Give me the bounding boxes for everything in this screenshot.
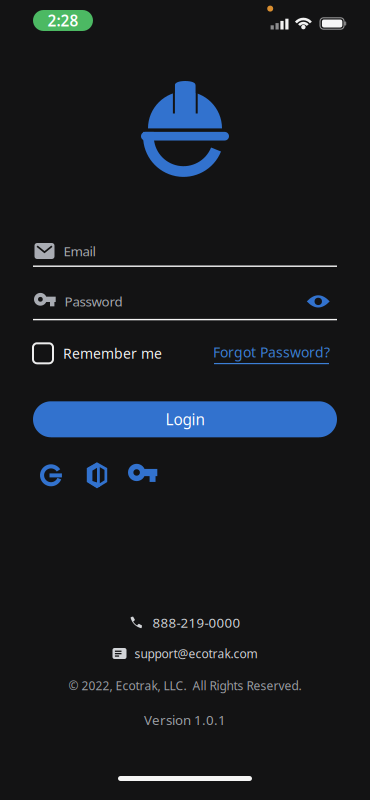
staticText: Version 1.0.1 xyxy=(144,711,226,729)
staticText: 2:28 xyxy=(47,10,78,31)
button[interactable]: Login xyxy=(33,401,337,437)
staticText: support@ecotrak.com xyxy=(134,645,257,662)
staticText: Remember me xyxy=(63,344,162,363)
button[interactable]: Forgot Password? xyxy=(212,342,337,364)
button[interactable]: support@ecotrak.com xyxy=(112,646,257,660)
button[interactable]: Single sign-on xyxy=(128,464,158,487)
button[interactable]: 888-219-0000 xyxy=(129,615,240,629)
staticText: © 2022, Ecotrak, LLC. All Rights Reserve… xyxy=(68,677,301,694)
staticText: Forgot Password? xyxy=(213,342,330,361)
staticText: 888-219-0000 xyxy=(152,613,240,632)
staticText: Email xyxy=(63,242,95,260)
button[interactable]: Show password xyxy=(306,295,330,308)
staticText: Login xyxy=(165,409,204,430)
button[interactable]: Remember me xyxy=(33,343,162,363)
button[interactable]: Sign in with Google xyxy=(38,463,64,488)
button[interactable]: Sign in with Microsoft xyxy=(86,462,108,489)
staticText: Password xyxy=(64,292,122,310)
